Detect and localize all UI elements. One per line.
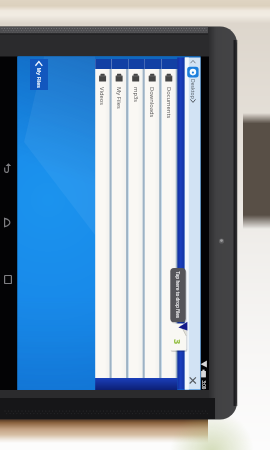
button[interactable]: My Files file manager on tablet <box>0 0 270 450</box>
